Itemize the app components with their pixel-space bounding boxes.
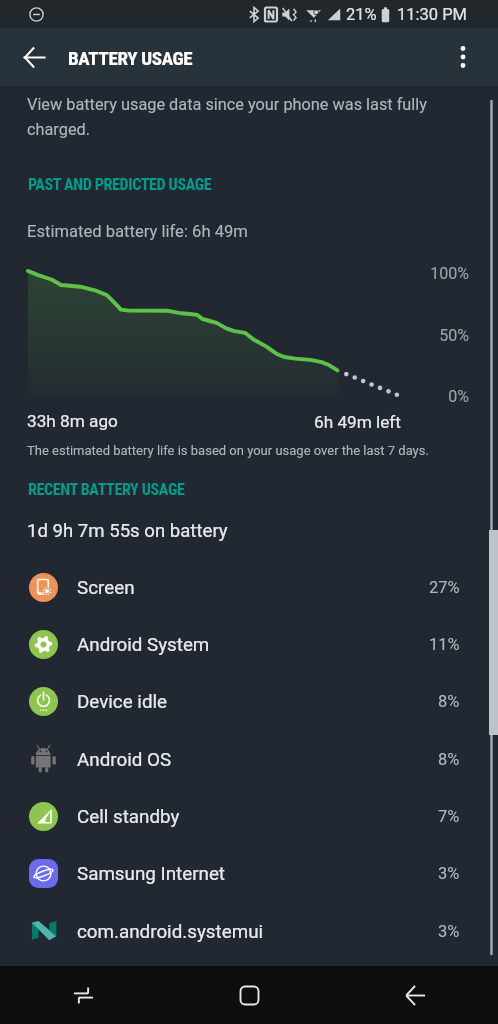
staticText: The estimated battery life is based on y… <box>27 443 429 458</box>
button[interactable]: com.android.systemui <box>0 903 498 960</box>
staticText: 8% <box>438 692 460 711</box>
staticText: Screen <box>77 577 135 599</box>
button[interactable]: More options <box>439 33 487 81</box>
staticText: Android OS <box>77 749 172 771</box>
staticText: 3% <box>438 922 460 941</box>
button[interactable]: Samsung Internet <box>0 845 498 902</box>
staticText: 3% <box>438 864 460 883</box>
staticText: 0% <box>448 387 469 406</box>
staticText: 27% <box>429 578 460 597</box>
staticText: 8% <box>438 750 460 769</box>
staticText: Cell standby <box>77 806 180 828</box>
staticText: RECENT BATTERY USAGE <box>28 480 185 499</box>
button[interactable]: Screen <box>0 559 498 616</box>
button[interactable]: Device idle <box>0 673 498 730</box>
staticText: Android System <box>77 634 210 656</box>
button[interactable]: Cell standby <box>0 788 498 845</box>
staticText: com.android.systemui <box>77 921 264 943</box>
staticText: 11% <box>429 635 460 654</box>
button[interactable]: Recents <box>0 966 166 1024</box>
staticText: Samsung Internet <box>77 863 226 885</box>
staticText: 7% <box>438 807 460 826</box>
staticText: 11:30 PM <box>397 5 467 24</box>
button[interactable]: Home <box>166 966 332 1024</box>
staticText: 21% <box>346 5 377 24</box>
staticText: 50% <box>439 326 469 345</box>
staticText: View battery usage data since your phone… <box>27 95 451 139</box>
staticText: 1d 9h 7m 55s on battery <box>27 520 228 542</box>
staticText: 100% <box>430 264 469 283</box>
staticText: Device idle <box>77 691 168 713</box>
staticText: Estimated battery life: 6h 49m <box>27 222 248 241</box>
staticText: 6h 49m left <box>314 412 401 432</box>
staticText: BATTERY USAGE <box>68 47 193 69</box>
button[interactable]: Android System <box>0 616 498 673</box>
button[interactable]: Android OS <box>0 731 498 788</box>
button[interactable]: Navigate up <box>10 33 58 81</box>
staticText: PAST AND PREDICTED USAGE <box>28 175 212 194</box>
button[interactable]: Back <box>332 966 498 1024</box>
staticText: 33h 8m ago <box>27 411 118 431</box>
